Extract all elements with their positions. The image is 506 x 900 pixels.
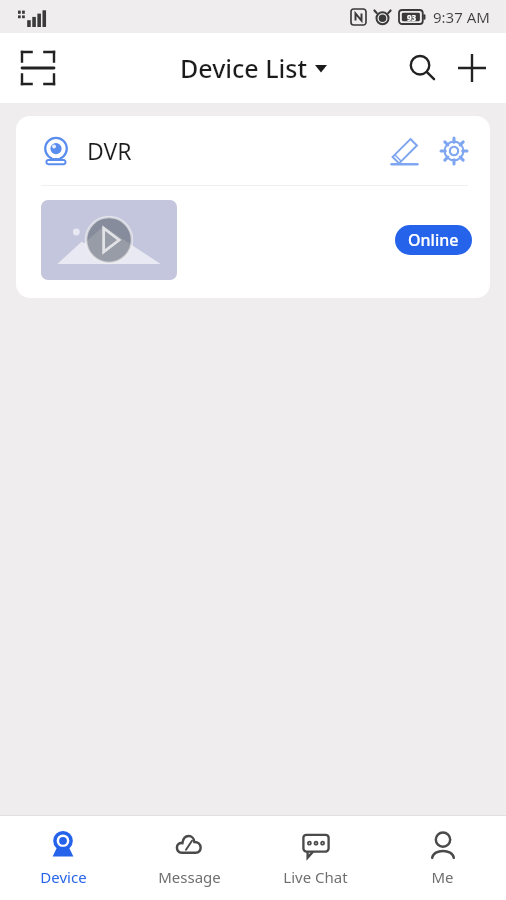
staticText: Device List (180, 51, 308, 85)
button[interactable]: Device settings (432, 129, 476, 173)
button[interactable]: Play live view (41, 200, 177, 280)
button[interactable]: Me (379, 816, 506, 900)
staticText: Device (40, 867, 87, 887)
button[interactable]: Live Chat (252, 816, 379, 900)
button[interactable]: Online (395, 225, 472, 255)
button[interactable]: Device (0, 816, 126, 900)
button[interactable]: DVR (16, 116, 490, 298)
button[interactable]: Search (398, 44, 446, 92)
button[interactable]: Device List (174, 47, 333, 89)
button[interactable]: Scan QR code (14, 44, 62, 92)
staticText: Me (431, 867, 454, 887)
staticText: Online (408, 229, 459, 251)
button[interactable]: Add device (448, 44, 496, 92)
staticText: Message (158, 867, 221, 887)
staticText: 93 (407, 12, 417, 23)
staticText: 9:37 AM (433, 7, 490, 27)
button[interactable]: Message (126, 816, 252, 900)
staticText: DVR (87, 135, 132, 166)
staticText: Live Chat (283, 867, 348, 887)
button[interactable]: Edit device name (382, 129, 426, 173)
